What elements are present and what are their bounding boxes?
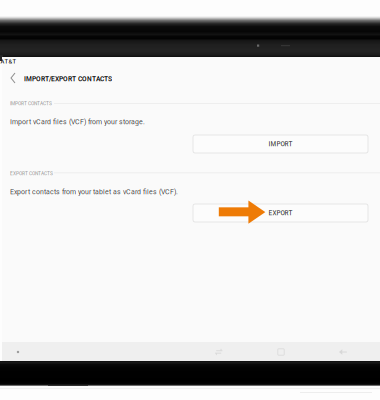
button[interactable]: Hide navigation bar [10, 346, 26, 358]
staticText: IMPORT CONTACTS [10, 101, 52, 106]
button[interactable]: Back [330, 345, 356, 359]
button[interactable]: Recent apps [206, 345, 232, 359]
button[interactable]: IMPORT [193, 135, 368, 153]
staticText: AT&T [0, 58, 16, 65]
staticText: IMPORT/EXPORT CONTACTS [24, 75, 112, 83]
staticText: EXPORT CONTACTS [10, 171, 53, 176]
staticText: Export contacts from your tablet as vCar… [10, 188, 178, 196]
button[interactable]: Home [268, 345, 294, 359]
button[interactable]: Back [5, 70, 21, 86]
staticText: Import vCard files (VCF) from your stora… [10, 118, 145, 126]
staticText: IMPORT [268, 140, 292, 148]
button[interactable]: EXPORT [193, 204, 368, 222]
staticText: EXPORT [268, 209, 292, 217]
